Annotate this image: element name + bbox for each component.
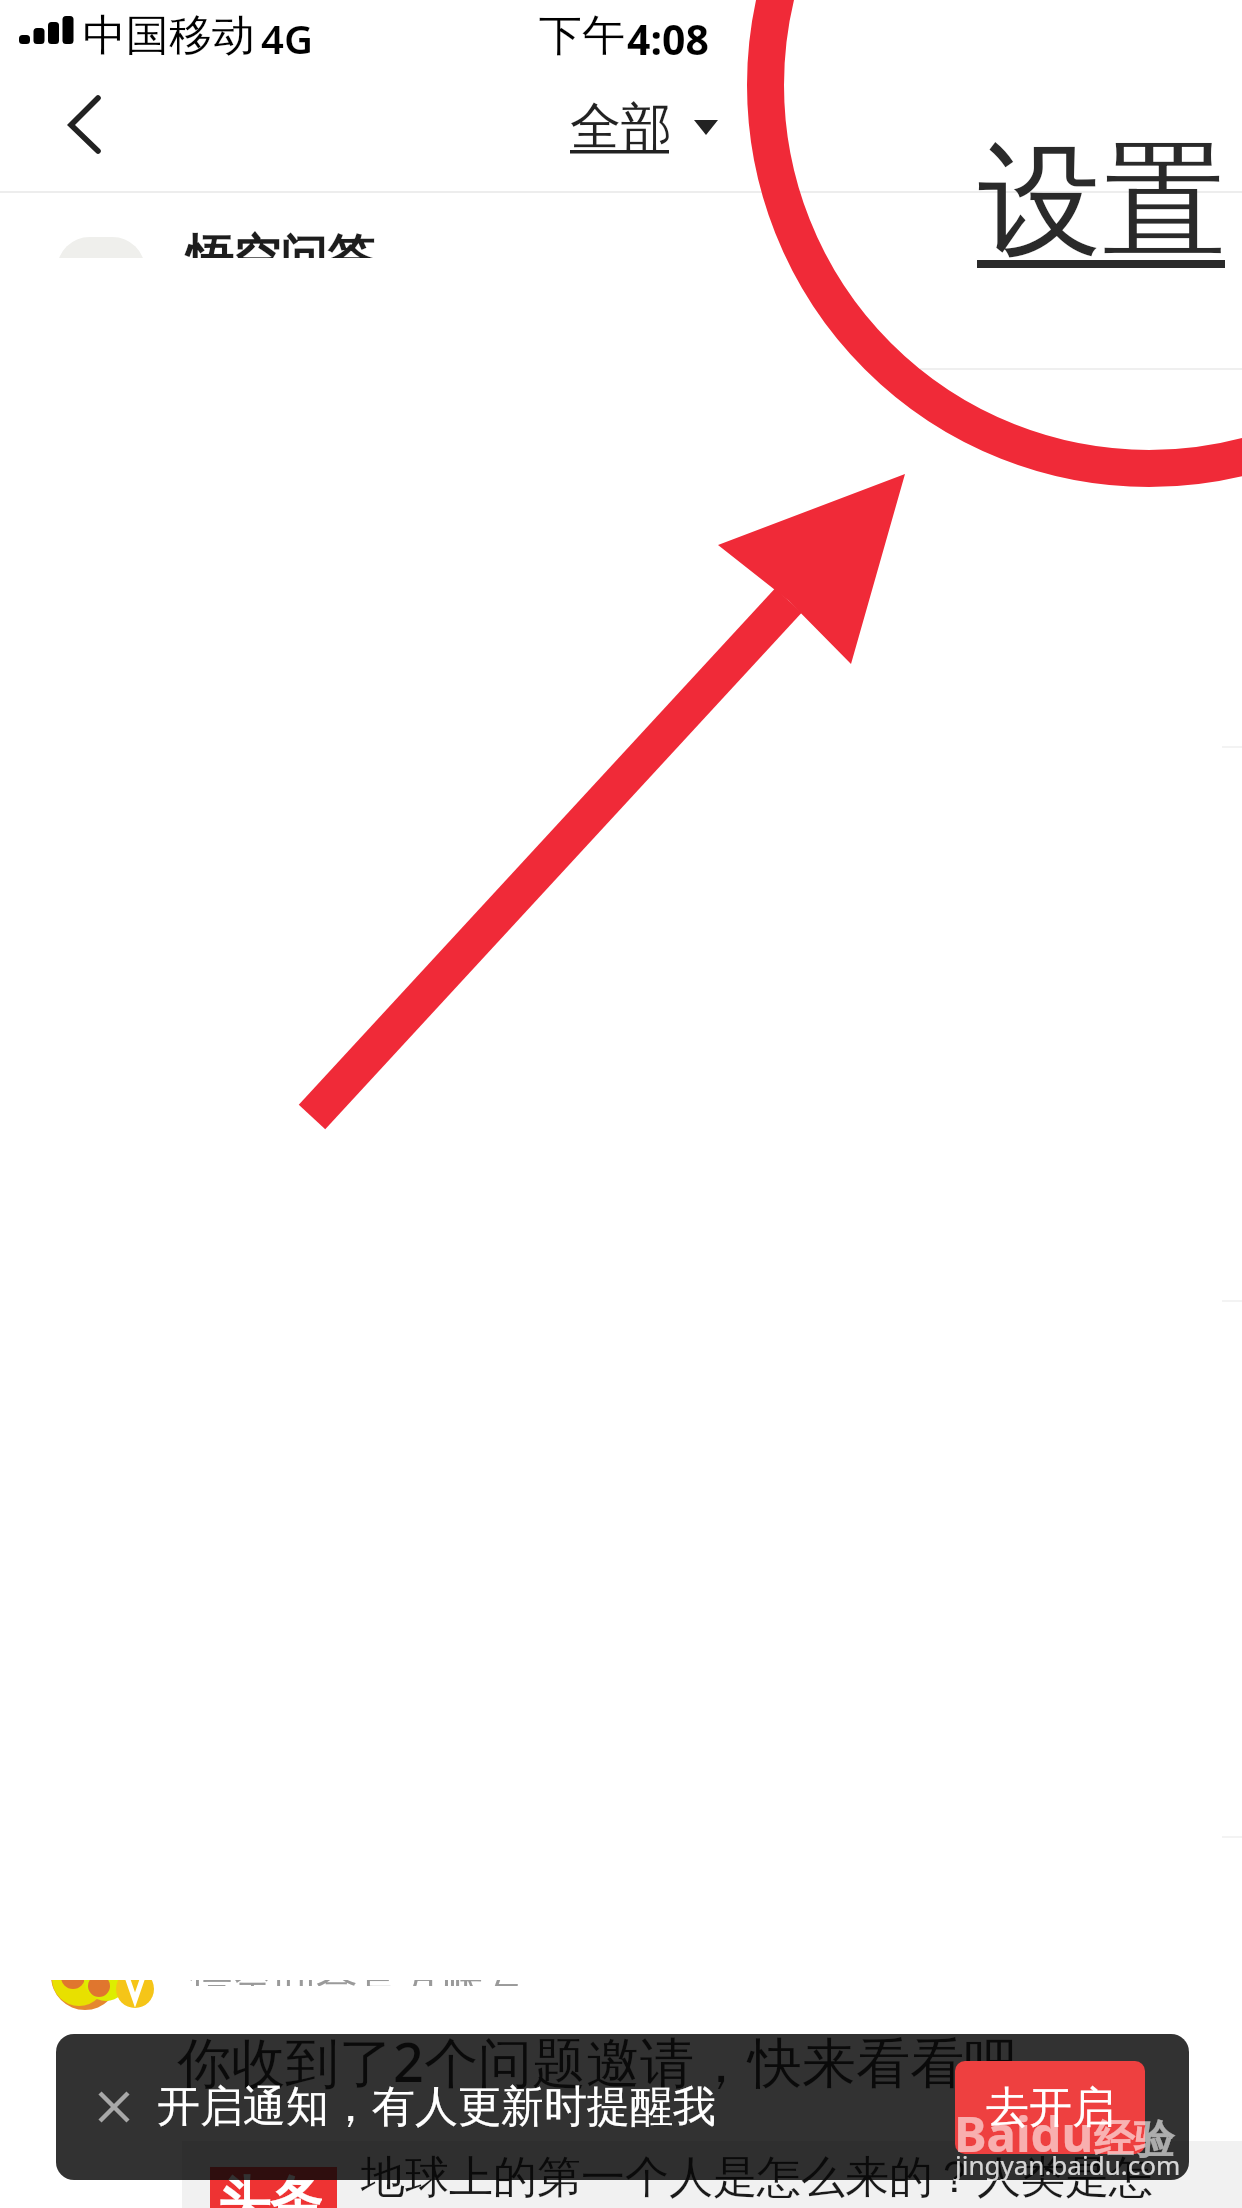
staticText: 开启通知，有人更新时提醒我: [157, 2080, 716, 2134]
button[interactable]: Back: [20, 83, 124, 187]
button[interactable]: 设置: [974, 117, 1234, 275]
staticText: Baidu: [954, 2100, 1094, 2167]
staticText: jingyan.baidu.com: [955, 2147, 1181, 2182]
staticText: 全部: [570, 95, 672, 159]
staticText: 头条: [218, 2169, 322, 2208]
button[interactable]: 悟空问答官方账号: [0, 1980, 1242, 2011]
staticText: 4G: [261, 11, 313, 65]
button[interactable]: 去开启: [955, 2061, 1145, 2154]
button[interactable]: 全部: [556, 82, 731, 158]
staticText: 设置: [978, 124, 1226, 280]
staticText: 你收到了2个问题邀请，快来看看吧: [177, 2024, 1018, 2098]
staticText: 地球上的第一个人是怎么来的？人类是怎: [361, 2150, 1153, 2205]
button[interactable]: 悟空问答: [0, 193, 1242, 258]
staticText: 中国移动: [83, 9, 255, 63]
staticText: 经验: [1094, 2114, 1174, 2164]
button[interactable]: Close: [69, 2034, 159, 2180]
button[interactable]: Close: [56, 2034, 1189, 2180]
staticText: 去开启: [986, 2081, 1115, 2135]
staticText: 4:08: [627, 11, 709, 67]
staticText: 悟空问答: [186, 228, 374, 258]
staticText: 悟空问答官方账号: [190, 1980, 526, 1986]
staticText: 下午: [539, 9, 625, 63]
